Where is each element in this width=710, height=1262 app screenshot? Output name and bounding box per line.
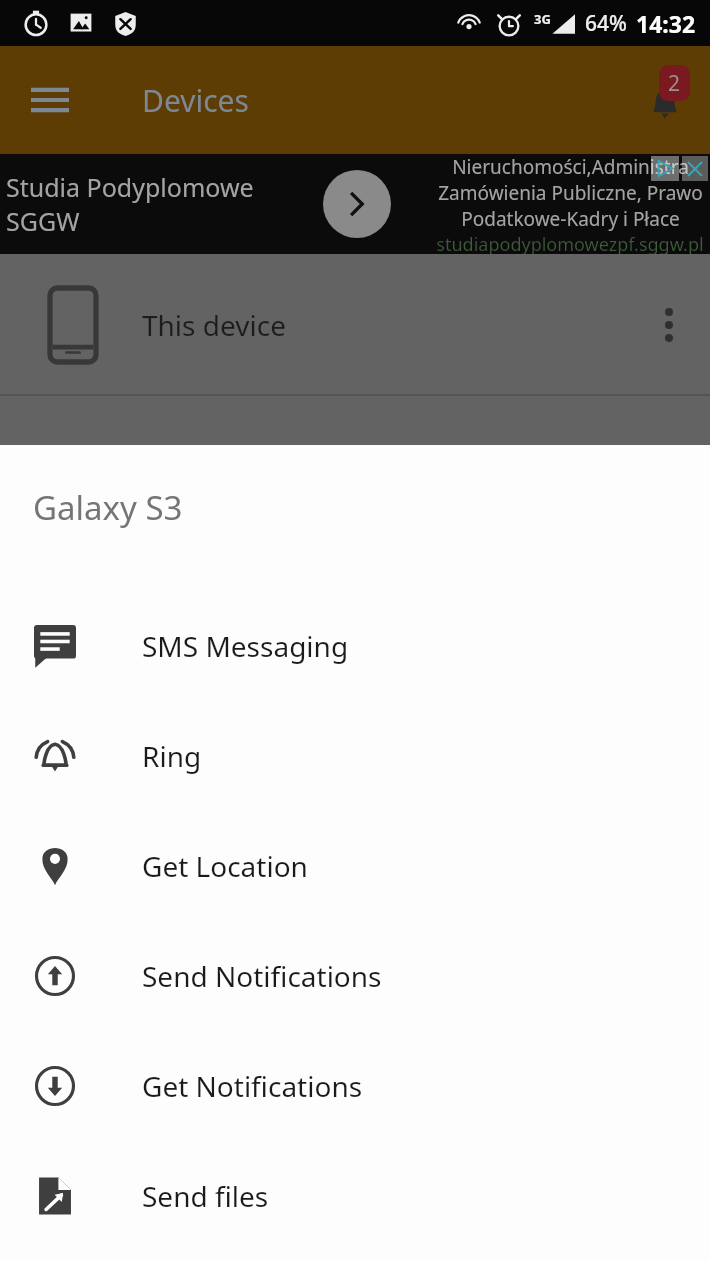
staticText: Galaxy S3	[33, 485, 183, 530]
button[interactable]: Ring	[0, 701, 710, 811]
button[interactable]: More options	[640, 296, 698, 354]
button[interactable]: SMS Messaging	[0, 591, 710, 701]
staticText: Send files	[142, 1177, 269, 1215]
staticText: studiapodyplomowezpf.sggw.pl	[436, 232, 704, 254]
button[interactable]: Send Notifications	[0, 921, 710, 1031]
staticText: Get Location	[142, 847, 308, 885]
staticText: Send Notifications	[142, 957, 382, 995]
staticText: SMS Messaging	[142, 627, 349, 665]
staticText: This device	[142, 306, 286, 344]
button[interactable]: Get Location	[0, 811, 710, 921]
staticText: 64%	[585, 9, 627, 38]
staticText: 3G	[534, 10, 551, 28]
button[interactable]: Studia Podyplomowe	[0, 154, 710, 254]
button[interactable]: Send files	[0, 1141, 710, 1251]
staticText: Nieruchomości,Administra	[452, 154, 689, 180]
staticText: Get Notifications	[142, 1067, 363, 1105]
button[interactable]: Notifications, 2 new	[632, 67, 698, 133]
staticText: Zamówienia Publiczne, Prawo	[438, 180, 703, 206]
staticText: SGGW	[6, 204, 80, 238]
button[interactable]: Get Notifications	[0, 1031, 710, 1141]
button[interactable]: Close ad	[682, 156, 708, 181]
staticText: Studia Podyplomowe	[6, 170, 254, 204]
staticText: 14:32	[636, 8, 696, 39]
staticText: Ring	[142, 737, 202, 775]
button[interactable]: Open navigation drawer	[22, 72, 78, 128]
button[interactable]: This device	[0, 254, 710, 396]
staticText: Devices	[142, 80, 249, 121]
staticText: Podatkowe-Kadry i Płace	[461, 206, 680, 232]
staticText: 2	[668, 69, 681, 98]
